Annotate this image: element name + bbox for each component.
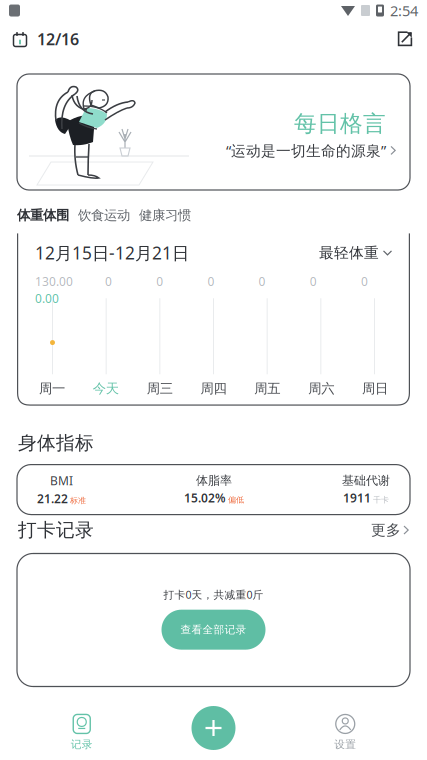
- button[interactable]: Add: [191, 706, 235, 750]
- staticText: 身体指标: [18, 432, 94, 454]
- button[interactable]: 记录: [0, 706, 163, 758]
- button[interactable]: 更多: [371, 521, 409, 539]
- staticText: 体脂率: [196, 473, 232, 488]
- staticText: 周五: [254, 380, 280, 397]
- staticText: 体重体围: [17, 207, 69, 223]
- staticText: 0: [310, 273, 317, 289]
- staticText: 查看全部记录: [180, 623, 246, 636]
- staticText: BMI: [50, 473, 73, 488]
- button[interactable]: 健康习惯: [139, 207, 191, 223]
- staticText: “运动是一切生命的源泉”: [226, 141, 386, 160]
- staticText: 12月15日-12月21日: [35, 241, 189, 264]
- staticText: 周三: [147, 380, 173, 397]
- staticText: 健康习惯: [139, 207, 191, 223]
- button[interactable]: 饮食运动: [78, 207, 130, 223]
- staticText: 0: [207, 273, 214, 289]
- staticText: 偏低: [228, 495, 244, 505]
- staticText: 12/16: [37, 28, 79, 50]
- staticText: 今天: [93, 380, 119, 397]
- button[interactable]: 每日格言: [17, 74, 410, 190]
- button[interactable]: Share: [383, 21, 427, 57]
- button[interactable]: 体重体围: [17, 207, 69, 223]
- staticText: 15.02%: [184, 490, 226, 506]
- staticText: 周四: [200, 380, 226, 397]
- staticText: 更多: [371, 521, 401, 539]
- staticText: 1911: [343, 490, 371, 506]
- staticText: 最轻体重: [319, 244, 379, 262]
- staticText: 打卡0天，共减重0斤: [163, 587, 263, 602]
- staticText: 0: [156, 273, 163, 289]
- staticText: 2:54: [390, 1, 418, 20]
- staticText: 饮食运动: [78, 207, 130, 223]
- staticText: 千卡: [373, 495, 389, 505]
- staticText: 0: [105, 273, 112, 289]
- staticText: 周一: [39, 380, 65, 397]
- staticText: 打卡记录: [18, 519, 94, 541]
- staticText: 21.22: [37, 491, 68, 506]
- staticText: 0: [259, 273, 266, 289]
- staticText: 设置: [334, 738, 356, 751]
- staticText: 基础代谢: [342, 473, 390, 488]
- button[interactable]: 12/16: [0, 20, 89, 58]
- button[interactable]: 查看全部记录: [161, 610, 265, 650]
- staticText: 每日格言: [294, 110, 386, 138]
- button[interactable]: 最轻体重: [319, 244, 392, 262]
- staticText: 0: [361, 273, 368, 289]
- staticText: 周六: [308, 380, 334, 397]
- staticText: 标准: [70, 496, 86, 505]
- staticText: 周日: [362, 380, 388, 397]
- button[interactable]: 设置: [263, 706, 427, 758]
- staticText: 0.00: [35, 290, 59, 306]
- staticText: 130.00: [35, 273, 73, 289]
- staticText: 记录: [71, 738, 93, 751]
